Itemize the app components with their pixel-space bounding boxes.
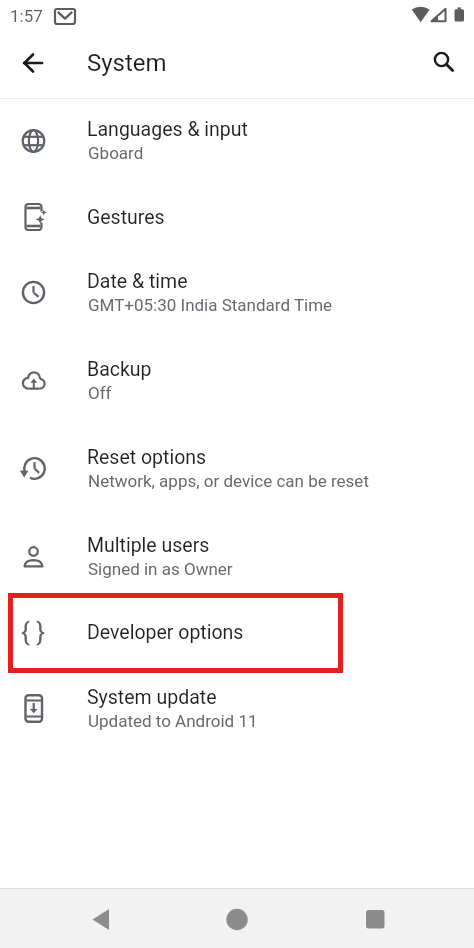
staticText: { } [21, 617, 46, 647]
staticText: Gestures [87, 206, 165, 229]
staticText: Reset options [87, 446, 207, 469]
button[interactable]: Languages & input [0, 98, 474, 186]
staticText: System [87, 49, 167, 77]
staticText: Multiple users [87, 534, 210, 557]
button[interactable]: Multiple users [0, 514, 474, 602]
staticText: Developer options [87, 621, 244, 644]
staticText: GMT+05:30 India Standard Time [88, 295, 333, 315]
staticText: Updated to Android 11 [88, 711, 258, 731]
button[interactable]: { } [0, 602, 474, 666]
button[interactable] [80, 899, 120, 939]
staticText: System update [87, 686, 217, 709]
staticText: Gboard [88, 143, 144, 163]
staticText: 1:57 [10, 6, 43, 26]
button[interactable] [424, 42, 462, 80]
staticText: Backup [87, 358, 152, 381]
button[interactable]: Reset options [0, 426, 474, 514]
staticText: Languages & input [87, 118, 248, 141]
button[interactable]: System update [0, 666, 474, 754]
button[interactable] [355, 899, 395, 939]
button[interactable]: Gestures [0, 186, 474, 250]
button[interactable]: Backup [0, 338, 474, 426]
staticText: Signed in as Owner [88, 559, 233, 579]
button[interactable] [217, 899, 257, 939]
button[interactable]: Date & time [0, 250, 474, 338]
button[interactable] [14, 44, 52, 82]
staticText: Off [88, 383, 112, 403]
staticText: Network, apps, or device can be reset [88, 471, 369, 491]
staticText: Date & time [87, 270, 188, 293]
